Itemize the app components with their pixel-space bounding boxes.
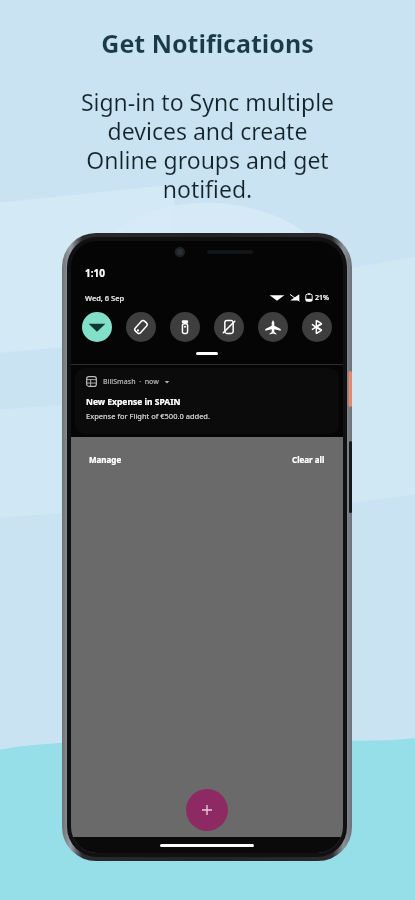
button[interactable]: Wi-Fi: [82, 312, 112, 342]
button[interactable]: Auto-rotate: [126, 312, 156, 342]
staticText: 1:10: [85, 266, 105, 280]
staticText: Sign-in to Sync multiple devices and cre…: [0, 86, 415, 205]
staticText: Wed, 6 Sep: [85, 293, 125, 303]
staticText: BillSmash · now: [103, 377, 159, 387]
staticText: Get Notifications: [0, 26, 415, 60]
button[interactable]: Bluetooth: [302, 312, 332, 342]
staticText: Expense for Flight of €500.0 added.: [86, 411, 210, 421]
button[interactable]: Flashlight: [170, 312, 200, 342]
button[interactable]: Clear all: [288, 451, 329, 468]
button[interactable]: Airplane mode: [258, 312, 288, 342]
staticText: New Expense in SPAIN: [86, 396, 181, 408]
staticText: 21%: [315, 293, 329, 303]
button[interactable]: Add expense: [186, 789, 228, 831]
button[interactable]: BillSmash · now: [75, 368, 339, 434]
staticText: Manage: [89, 454, 122, 465]
button[interactable]: Mute: [214, 312, 244, 342]
staticText: Clear all: [292, 454, 325, 465]
button[interactable]: Manage: [85, 451, 126, 468]
